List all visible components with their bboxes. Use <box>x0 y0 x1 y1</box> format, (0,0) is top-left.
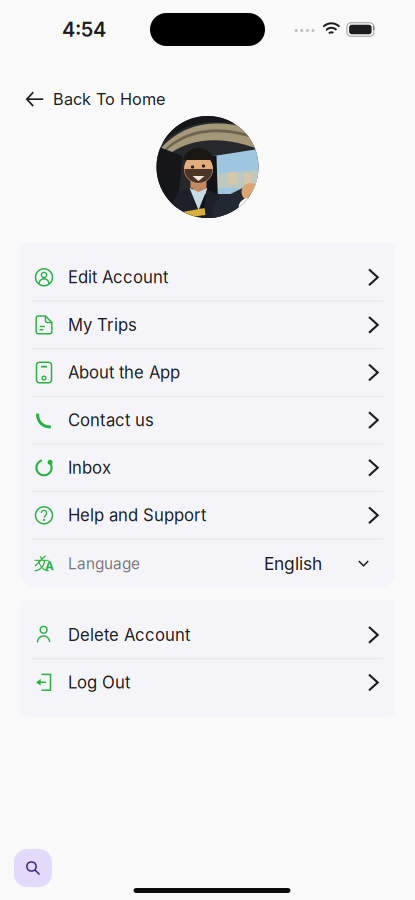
button[interactable]: Delete Account <box>20 612 395 658</box>
staticText: About the App <box>68 362 180 383</box>
staticText: Log Out <box>68 672 130 693</box>
button[interactable]: About the App <box>20 349 395 396</box>
staticText: English <box>264 553 322 574</box>
staticText: Edit Account <box>68 267 168 287</box>
staticText: A <box>45 559 54 573</box>
button[interactable]: Log Out <box>20 659 395 706</box>
staticText: Back To Home <box>53 89 165 109</box>
button[interactable]: My Trips <box>20 302 395 348</box>
staticText: Contact us <box>68 410 154 430</box>
staticText: Help and Support <box>68 505 206 525</box>
button[interactable]: 文 <box>20 540 395 588</box>
button[interactable]: Contact us <box>20 397 395 443</box>
button[interactable]: Back To Home <box>0 59 181 109</box>
button[interactable]: Inbox <box>20 444 395 491</box>
button[interactable]: Search <box>14 849 52 887</box>
staticText: Language <box>68 554 140 573</box>
staticText: Delete Account <box>68 625 190 645</box>
staticText: 4:54 <box>62 17 106 42</box>
button[interactable]: Help and Support <box>20 492 395 539</box>
staticText: 文 <box>34 554 50 574</box>
staticText: Inbox <box>68 458 111 478</box>
button[interactable]: Edit Account <box>20 254 395 301</box>
staticText: My Trips <box>68 315 137 335</box>
